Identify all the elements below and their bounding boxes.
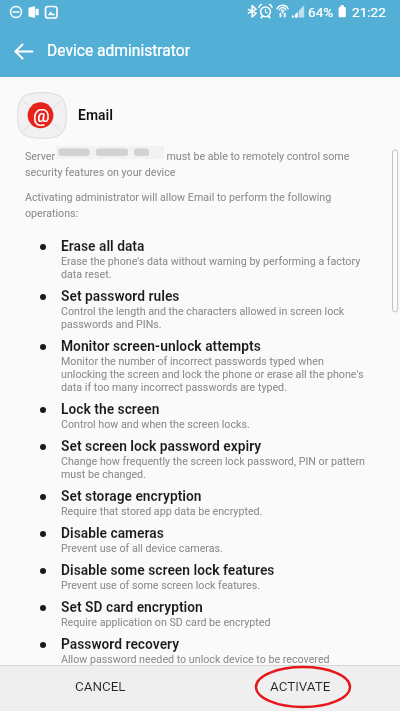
staticText: Lock the screen [61,401,160,418]
staticText: Erase all data [61,238,145,255]
button[interactable]: ACTIVATE [200,665,400,711]
staticText: Activating administrator will allow Emai… [25,188,368,220]
staticText: Control the length and the characters al… [61,305,368,331]
staticText: Require application on SD card be encryp… [61,616,271,629]
staticText: CANCEL [75,679,126,695]
staticText: Disable some screen lock features [61,562,275,579]
staticText: @ [33,105,50,127]
staticText: Set screen lock password expiry [61,438,262,455]
staticText: Change how frequently the screen lock pa… [61,455,368,481]
staticText: Require that stored app data be encrypte… [61,505,263,518]
staticText: Device administrator [47,42,190,60]
staticText: Disable cameras [61,525,164,542]
button[interactable]: Navigate up [0,28,47,75]
staticText: Prevent use of some screen lock features… [61,579,261,592]
staticText: 64% [308,4,334,20]
staticText: Monitor the number of incorrect password… [61,355,368,394]
staticText: Server must be able to remotely control … [25,147,368,179]
staticText: Set SD card encryption [61,599,203,616]
staticText: Password recovery [61,636,180,653]
staticText: Email [78,107,113,123]
staticText: Control how and when the screen locks. [61,418,250,431]
staticText: Set password rules [61,288,180,305]
staticText: Prevent use of all device cameras. [61,542,223,555]
staticText: Set storage encryption [61,488,202,505]
staticText: 21:22 [352,4,386,20]
staticText: Allow password needed to unlock device t… [61,653,330,665]
button[interactable]: CANCEL [0,665,200,711]
staticText: Erase the phone's data without warning b… [61,255,368,281]
staticText: Monitor screen-unlock attempts [61,338,261,355]
staticText: ACTIVATE [270,679,331,695]
